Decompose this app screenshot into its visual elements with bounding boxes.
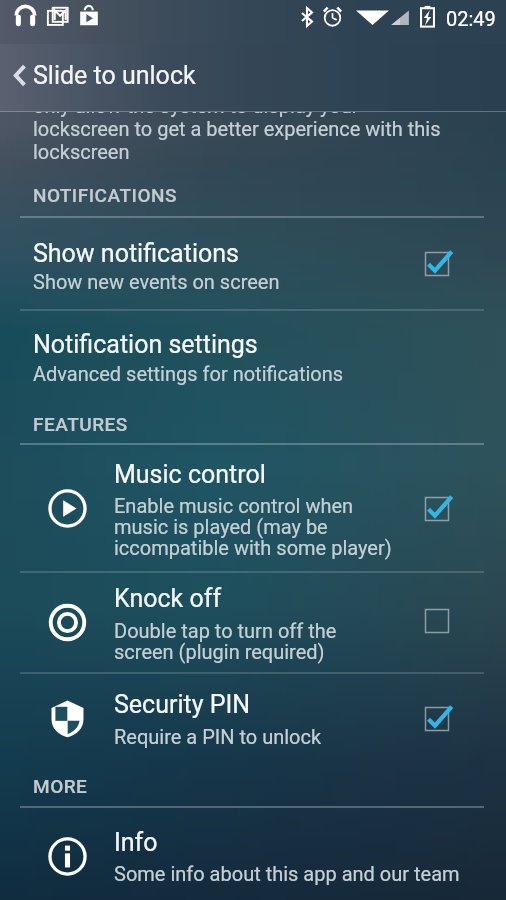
- staticText: Notification settings: [33, 330, 258, 359]
- button[interactable]: Back: [4, 53, 34, 97]
- staticText: Double tap to turn off the: [114, 619, 337, 642]
- staticText: Info: [114, 828, 158, 857]
- staticText: music is played (may be: [114, 515, 328, 538]
- staticText: Some info about this app and our team: [114, 862, 460, 885]
- staticText: FEATURES: [33, 413, 128, 435]
- staticText: iccompatible with some player): [114, 536, 392, 559]
- button[interactable]: Disabled: [419, 603, 455, 639]
- staticText: only allow the system to display your: [33, 94, 359, 117]
- button[interactable]: Enabled: [419, 491, 455, 527]
- staticText: 02:49: [446, 7, 496, 30]
- staticText: Knock off: [114, 584, 222, 613]
- staticText: Show notifications: [33, 239, 239, 268]
- button[interactable]: [0, 672, 506, 760]
- staticText: Advanced settings for notifications: [33, 362, 344, 385]
- button[interactable]: Enabled: [419, 701, 455, 737]
- staticText: Slide to unlock: [33, 61, 196, 90]
- staticText: Enable music control when: [114, 494, 354, 517]
- button[interactable]: [0, 443, 506, 571]
- button[interactable]: Enabled: [419, 246, 455, 282]
- staticText: Show new events on screen: [33, 270, 280, 293]
- button[interactable]: [0, 216, 506, 309]
- staticText: Music control: [114, 460, 266, 489]
- staticText: NOTIFICATIONS: [33, 184, 177, 206]
- staticText: screen (plugin required): [114, 640, 325, 663]
- staticText: lockscreen to get a better experience wi…: [33, 117, 441, 140]
- staticText: Require a PIN to unlock: [114, 725, 322, 748]
- staticText: lockscreen: [33, 140, 130, 163]
- staticText: Security PIN: [114, 690, 251, 719]
- button[interactable]: [0, 806, 506, 900]
- button[interactable]: [0, 309, 506, 400]
- staticText: MORE: [33, 775, 88, 797]
- button[interactable]: [0, 571, 506, 672]
